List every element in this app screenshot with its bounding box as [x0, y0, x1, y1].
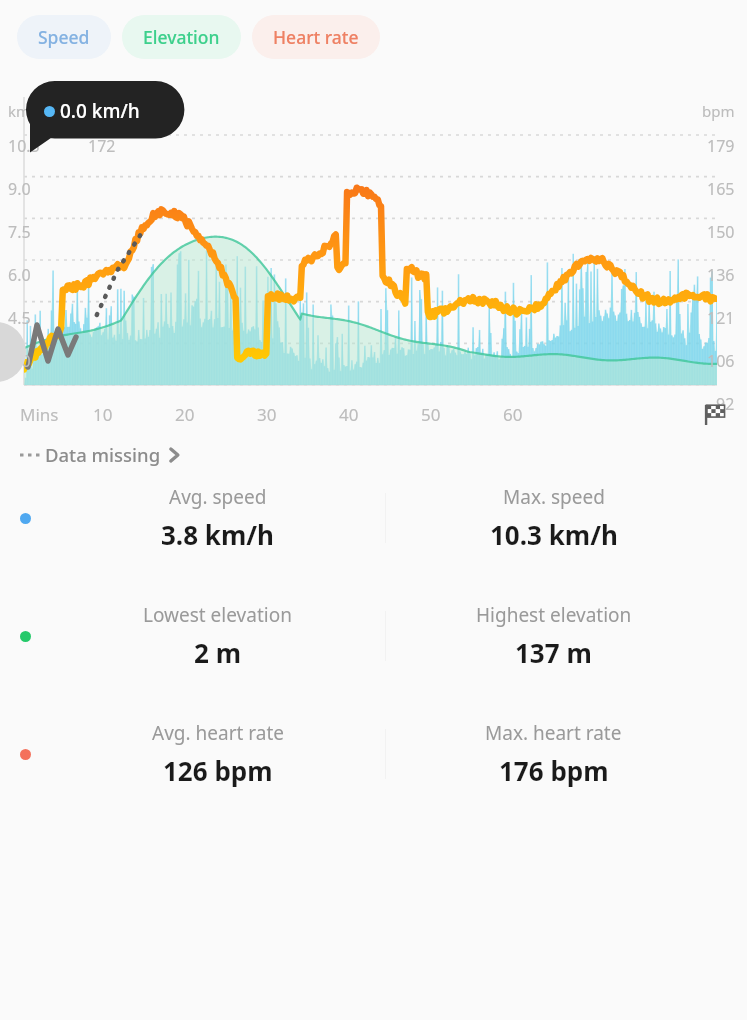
- button[interactable]: Heart rate: [252, 15, 380, 59]
- staticText: Mins: [20, 403, 59, 426]
- button[interactable]: Max. heart rate: [386, 716, 721, 792]
- staticText: 10: [93, 403, 113, 426]
- staticText: 172: [88, 135, 116, 157]
- staticText: Avg. heart rate: [152, 720, 284, 746]
- staticText: 150: [707, 221, 735, 243]
- button[interactable]: Finish: [701, 401, 727, 427]
- staticText: 106: [707, 350, 735, 372]
- staticText: Lowest elevation: [143, 602, 292, 628]
- staticText: m: [88, 101, 103, 121]
- staticText: 3.8 km/h: [161, 517, 274, 552]
- staticText: Highest elevation: [476, 602, 632, 628]
- staticText: 6.0: [8, 264, 31, 286]
- staticText: Elevation: [143, 25, 220, 49]
- staticText: Avg. speed: [169, 484, 267, 510]
- staticText: 165: [707, 178, 735, 200]
- staticText: Max. speed: [503, 484, 605, 510]
- staticText: 136: [707, 264, 735, 286]
- button[interactable]: Highest elevation: [386, 598, 721, 674]
- button[interactable]: Max. speed: [386, 480, 721, 556]
- button[interactable]: Lowest elevation: [50, 598, 385, 674]
- staticText: 10.5: [8, 135, 40, 157]
- staticText: 0.0 km/h: [60, 98, 140, 124]
- button[interactable]: Speed: [17, 15, 111, 59]
- staticText: 3.0: [8, 350, 31, 372]
- staticText: 30: [257, 403, 277, 426]
- staticText: Heart rate: [273, 25, 359, 49]
- staticText: km/h: [8, 101, 45, 121]
- staticText: 4.5: [8, 307, 31, 329]
- staticText: Speed: [38, 25, 90, 49]
- staticText: 10.3 km/h: [490, 517, 618, 552]
- button[interactable]: Elevation: [122, 15, 241, 59]
- staticText: 9.0: [8, 178, 31, 200]
- staticText: Data missing: [45, 442, 161, 467]
- staticText: 137 m: [515, 635, 592, 670]
- staticText: 92: [716, 393, 735, 415]
- staticText: 176 bpm: [499, 753, 609, 788]
- staticText: 2 m: [194, 635, 241, 670]
- staticText: 126 bpm: [163, 753, 273, 788]
- staticText: 20: [175, 403, 195, 426]
- staticText: 121: [707, 307, 735, 329]
- staticText: 179: [707, 135, 735, 157]
- staticText: 7.5: [8, 221, 31, 243]
- staticText: Max. heart rate: [485, 720, 622, 746]
- staticText: 50: [421, 403, 441, 426]
- staticText: 60: [503, 403, 523, 426]
- staticText: bpm: [702, 101, 735, 121]
- button[interactable]: Avg. speed: [50, 480, 385, 556]
- button[interactable]: Avg. heart rate: [50, 716, 385, 792]
- staticText: 40: [339, 403, 359, 426]
- button[interactable]: Data missing: [16, 439, 185, 470]
